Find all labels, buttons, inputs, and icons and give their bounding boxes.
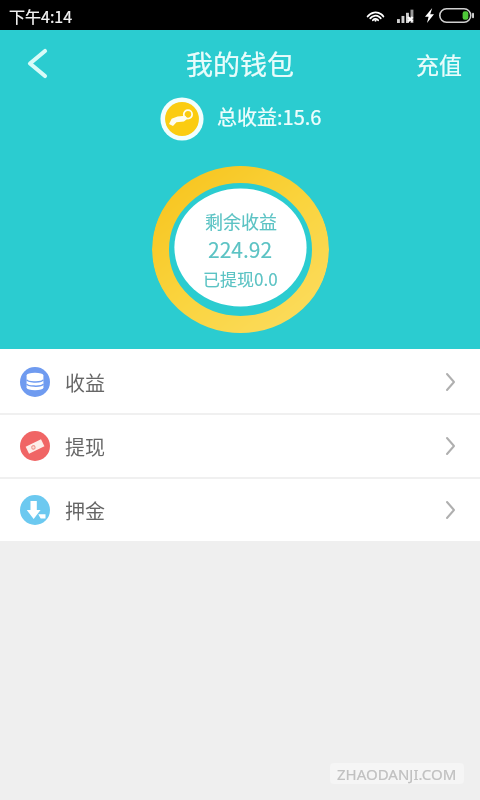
button[interactable]: 充值 [398,30,480,96]
button[interactable]: 提现 [0,415,480,477]
staticText: 我的钱包 [186,44,294,83]
button[interactable]: Back [6,30,68,96]
staticText: 剩余收益 [205,208,277,234]
staticText: ZHAODANJI.COM [337,764,457,784]
staticText: 224.92 [208,234,273,264]
button[interactable]: 剩余收益 [152,166,329,333]
staticText: 下午4:14 [9,4,73,27]
button[interactable]: 押金 [0,479,480,541]
staticText: 总收益:15.6 [217,102,322,131]
staticText: 收益 [65,368,105,397]
staticText: 提现 [65,432,105,461]
staticText: 已提现0.0 [203,266,278,291]
button[interactable]: 收益 [0,351,480,413]
staticText: 充值 [416,47,462,80]
staticText: 押金 [65,496,105,525]
